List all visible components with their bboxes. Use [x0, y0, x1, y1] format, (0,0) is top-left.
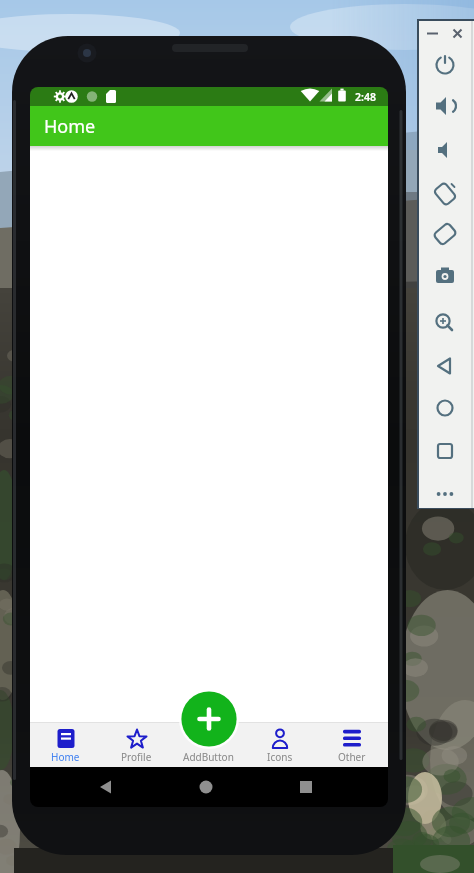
staticText: Home	[44, 114, 96, 139]
button[interactable]	[428, 350, 462, 382]
button[interactable]: AddButton	[172, 723, 244, 767]
button[interactable]	[428, 435, 462, 467]
button[interactable]	[428, 307, 462, 339]
button[interactable]	[428, 134, 462, 166]
button[interactable]	[428, 218, 462, 250]
staticText: Other	[338, 750, 366, 764]
button[interactable]	[428, 260, 462, 292]
button[interactable]	[91, 772, 121, 802]
staticText: Icons	[267, 750, 293, 764]
staticText: AddButton	[183, 750, 234, 764]
button[interactable]	[428, 478, 462, 510]
button[interactable]: Profile	[101, 723, 172, 767]
staticText: Profile	[121, 750, 152, 764]
button[interactable]	[428, 178, 462, 210]
button[interactable]	[428, 49, 462, 81]
button[interactable]	[291, 772, 321, 802]
button[interactable]	[191, 772, 221, 802]
button[interactable]	[428, 392, 462, 424]
staticText: 2:48	[355, 90, 376, 104]
button[interactable]: Icons	[244, 723, 316, 767]
staticText: Home	[51, 750, 80, 764]
button[interactable]	[428, 90, 462, 122]
button[interactable]	[179, 689, 239, 749]
button[interactable]: Other	[316, 723, 388, 767]
button[interactable]: Home	[30, 723, 101, 767]
